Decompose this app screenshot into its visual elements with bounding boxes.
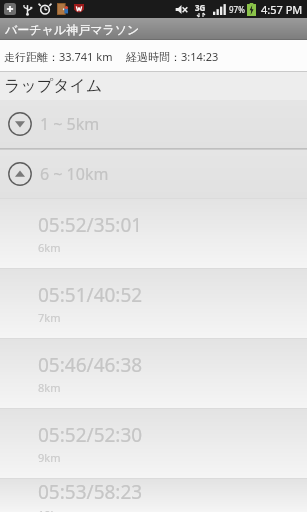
staticText: 6km bbox=[38, 240, 61, 255]
staticText: 05:53/58:23 bbox=[38, 479, 143, 505]
button[interactable]: Collapse group bbox=[0, 150, 307, 198]
staticText: 05:52/52:30 bbox=[38, 422, 143, 448]
button[interactable]: 05:52/52:30 bbox=[0, 409, 307, 478]
staticText: 6 ~ 10km bbox=[40, 163, 109, 185]
button[interactable]: 05:53/58:23 bbox=[0, 479, 307, 512]
staticText: 9km bbox=[38, 450, 61, 465]
staticText: ラップタイム bbox=[4, 76, 103, 96]
button[interactable]: Expand group bbox=[0, 100, 307, 148]
button[interactable]: 05:46/46:38 bbox=[0, 339, 307, 408]
button[interactable]: 05:51/40:52 bbox=[0, 269, 307, 338]
staticText: 4:57 PM bbox=[261, 2, 303, 17]
staticText: バーチャル神戸マラソン bbox=[5, 22, 140, 37]
staticText: 05:46/46:38 bbox=[38, 352, 143, 378]
staticText: 05:51/40:52 bbox=[38, 282, 143, 308]
staticText: 97% bbox=[229, 4, 245, 15]
button[interactable]: 05:52/35:01 bbox=[0, 199, 307, 268]
staticText: 1 ~ 5km bbox=[40, 113, 100, 135]
staticText: 10km bbox=[38, 507, 67, 512]
staticText: 3G bbox=[195, 2, 206, 13]
staticText: 7km bbox=[38, 310, 61, 325]
staticText: 05:52/35:01 bbox=[38, 212, 143, 238]
other: Collapse group bbox=[8, 162, 32, 186]
staticText: 経過時間：3:14:23 bbox=[126, 49, 219, 64]
staticText: 8km bbox=[38, 380, 61, 395]
other: Expand group bbox=[8, 112, 32, 136]
staticText: 走行距離：33.741 km bbox=[4, 49, 113, 64]
